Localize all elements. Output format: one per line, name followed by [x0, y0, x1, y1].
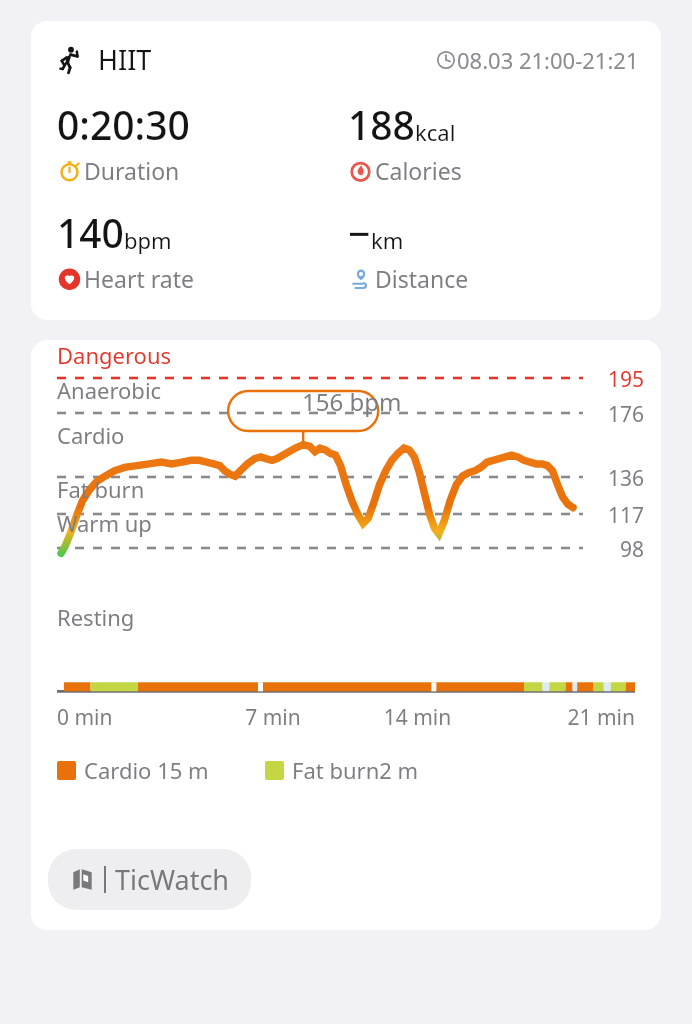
other: HIIT workout [57, 46, 85, 74]
staticText: 21 min [490, 703, 635, 732]
staticText: 195 [608, 365, 645, 394]
button[interactable]: TicWatch [48, 849, 251, 910]
staticText: 98 [620, 535, 645, 564]
staticText: − [348, 206, 371, 259]
button[interactable]: 140 [57, 206, 348, 294]
staticText: Resting [57, 602, 135, 632]
staticText: Cardio 15 m [84, 755, 209, 785]
staticText: 136 [608, 464, 645, 493]
staticText: Cardio [57, 420, 125, 450]
staticText: 14 min [345, 703, 490, 732]
staticText: Fat burn2 m [292, 755, 419, 785]
staticText: 176 [608, 400, 645, 429]
staticText: km [371, 225, 404, 255]
staticText: Distance [375, 263, 469, 294]
staticText: Duration [84, 155, 180, 186]
staticText: TicWatch [115, 861, 230, 898]
staticText: Fat burn [57, 474, 145, 504]
staticText: kcal [415, 117, 456, 147]
staticText: 188 [348, 98, 415, 151]
other: TicWatch [69, 866, 96, 893]
staticText: 7 min [201, 703, 345, 732]
staticText: 140 [57, 206, 124, 259]
staticText: 156 bpm [302, 385, 402, 418]
staticText: 117 [608, 501, 645, 530]
staticText: Anaerobic [57, 375, 162, 405]
staticText: Dangerous [57, 340, 172, 370]
staticText: 0:20:30 [57, 98, 190, 151]
button[interactable]: − [348, 206, 639, 294]
staticText: 0 min [57, 703, 201, 732]
staticText: Warm up [57, 508, 152, 538]
staticText: Heart rate [84, 263, 194, 294]
button[interactable]: 188 [348, 98, 639, 186]
staticText: bpm [124, 225, 172, 255]
staticText: Calories [375, 155, 462, 186]
button[interactable]: 0:20:30 [57, 98, 348, 186]
staticText: HIIT [98, 41, 152, 78]
staticText: 08.03 21:00-21:21 [457, 45, 639, 75]
